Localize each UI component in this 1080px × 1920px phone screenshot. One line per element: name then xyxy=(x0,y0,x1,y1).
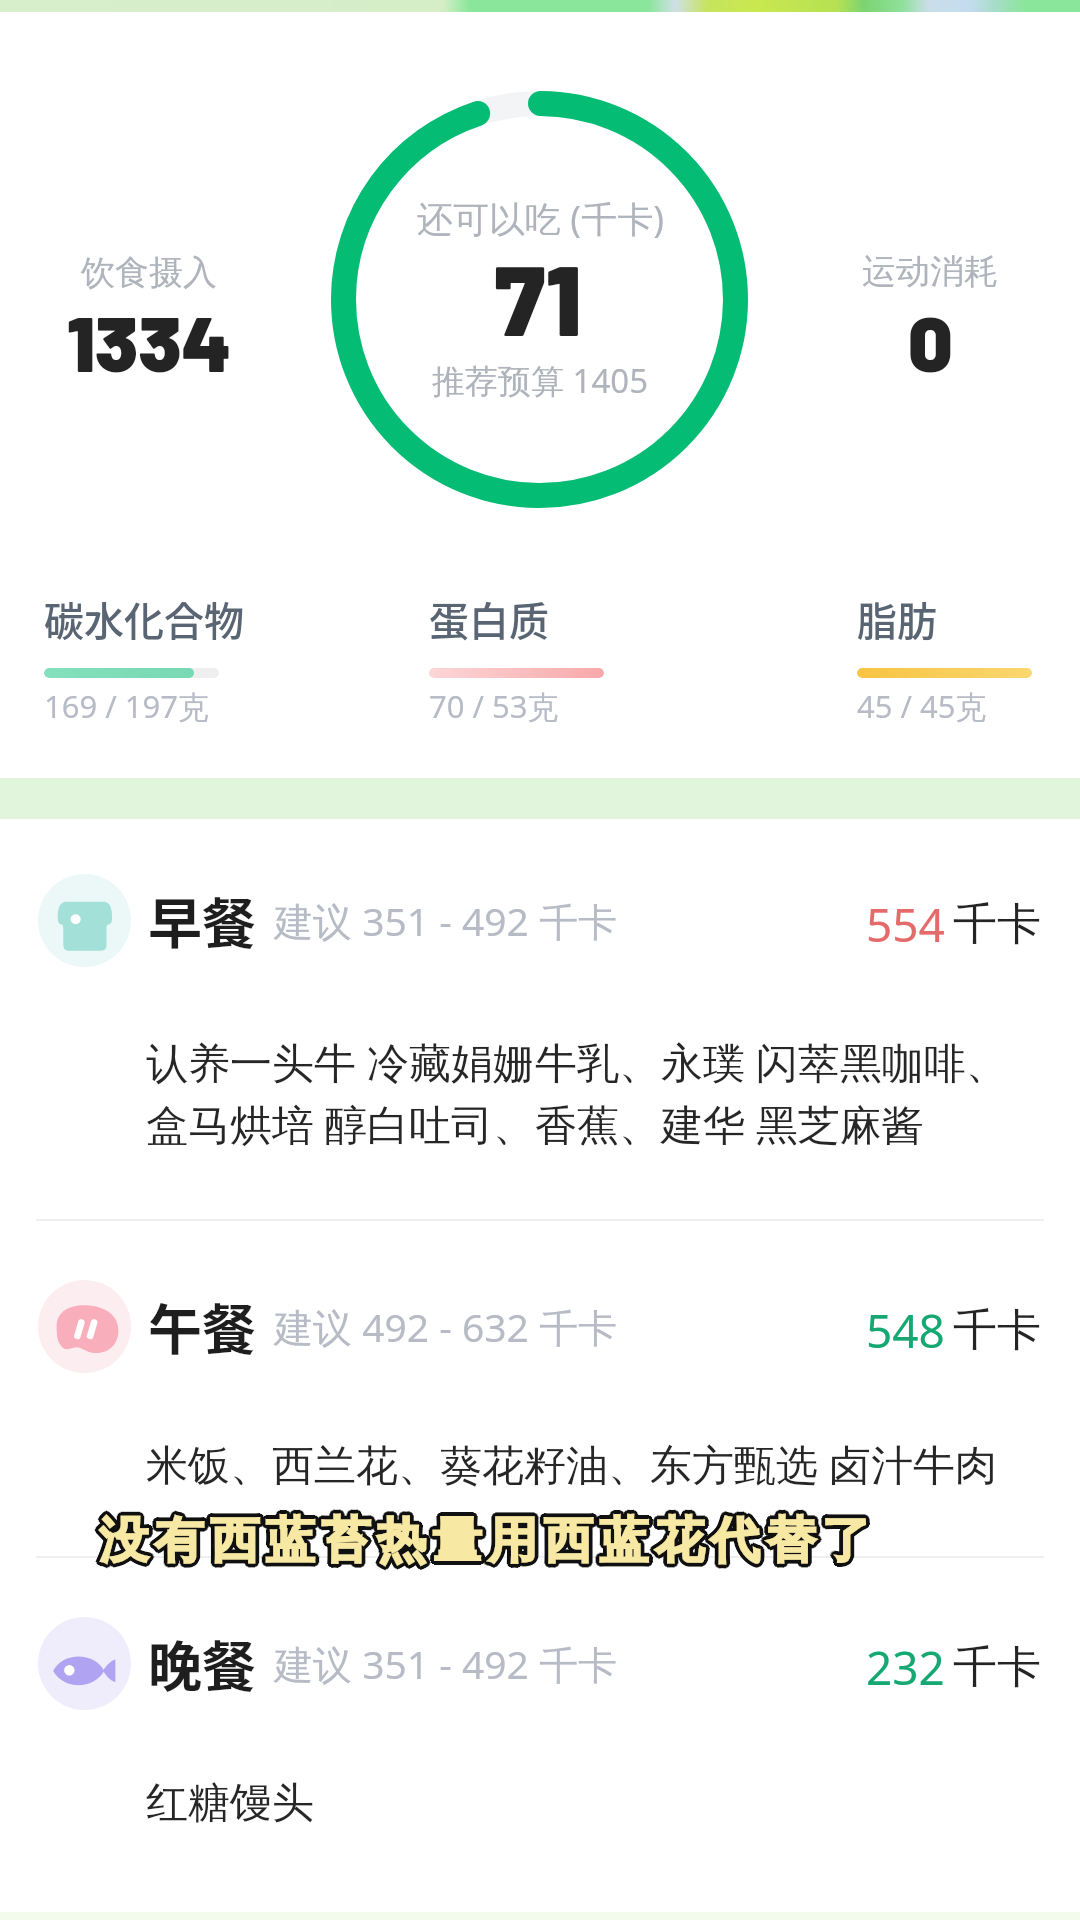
staticText: 548 xyxy=(866,1299,945,1362)
staticText: 没有西蓝苔热量用西蓝花代替了 xyxy=(96,1511,875,1573)
staticText: 71 xyxy=(495,238,581,356)
staticText: 没有西蓝苔热量用西蓝花代替了 xyxy=(98,1509,877,1571)
staticText: 盒马烘培 醇白吐司、香蕉、建华 黑芝麻酱 xyxy=(146,1095,924,1152)
staticText: 碳水化合物 xyxy=(44,590,244,648)
staticText: 没有西蓝苔热量用西蓝花代替了 xyxy=(102,1511,881,1573)
button[interactable]: 红糖馒头 xyxy=(146,1777,1046,1830)
staticText: 没有西蓝苔热量用西蓝花代替了 xyxy=(98,1511,877,1573)
staticText: 没有西蓝苔热量用西蓝花代替了 xyxy=(98,1513,877,1575)
button[interactable]: 米饭、西兰花、葵花籽油、东方甄选 卤汁牛肉 xyxy=(146,1435,1046,1492)
staticText: 554 xyxy=(866,893,945,956)
staticText: 运动消耗 xyxy=(862,250,998,293)
staticText: 没有西蓝苔热量用西蓝花代替了 xyxy=(102,1510,881,1572)
staticText: 没有西蓝苔热量用西蓝花代替了 xyxy=(99,1507,878,1569)
staticText: 没有西蓝苔热量用西蓝花代替了 xyxy=(102,1508,881,1570)
staticText: 没有西蓝苔热量用西蓝花代替了 xyxy=(97,1513,876,1575)
staticText: 70 / 53克 xyxy=(429,685,559,727)
staticText: 红糖馒头 xyxy=(146,1777,314,1830)
staticText: 232 xyxy=(866,1636,945,1699)
staticText: 没有西蓝苔热量用西蓝花代替了 xyxy=(103,1510,882,1572)
staticText: 没有西蓝苔热量用西蓝花代替了 xyxy=(99,1508,878,1570)
staticText: 没有西蓝苔热量用西蓝花代替了 xyxy=(98,1507,877,1569)
staticText: 0 xyxy=(908,294,953,388)
staticText: 没有西蓝苔热量用西蓝花代替了 xyxy=(97,1509,876,1571)
staticText: 没有西蓝苔热量用西蓝花代替了 xyxy=(97,1511,876,1573)
staticText: 没有西蓝苔热量用西蓝花代替了 xyxy=(100,1513,879,1575)
staticText: 建议 492 - 632 千卡 xyxy=(274,1300,617,1353)
staticText: 没有西蓝苔热量用西蓝花代替了 xyxy=(101,1511,880,1573)
staticText: 没有西蓝苔热量用西蓝花代替了 xyxy=(97,1508,876,1570)
staticText: 没有西蓝苔热量用西蓝花代替了 xyxy=(100,1508,879,1570)
staticText: 早餐 xyxy=(148,881,256,959)
staticText: 还可以吃 (千卡) xyxy=(417,194,664,243)
staticText: 45 / 45克 xyxy=(857,685,987,727)
staticText: 没有西蓝苔热量用西蓝花代替了 xyxy=(102,1512,881,1574)
staticText: 没有西蓝苔热量用西蓝花代替了 xyxy=(102,1509,881,1571)
staticText: 千卡 xyxy=(953,1640,1041,1695)
staticText: 没有西蓝苔热量用西蓝花代替了 xyxy=(96,1510,875,1572)
staticText: 没有西蓝苔热量用西蓝花代替了 xyxy=(99,1510,878,1572)
staticText: 没有西蓝苔热量用西蓝花代替了 xyxy=(101,1513,880,1575)
button[interactable]: 蛋白质 xyxy=(429,590,604,727)
staticText: 没有西蓝苔热量用西蓝花代替了 xyxy=(101,1512,880,1574)
staticText: 没有西蓝苔热量用西蓝花代替了 xyxy=(98,1510,877,1572)
staticText: 没有西蓝苔热量用西蓝花代替了 xyxy=(100,1511,879,1573)
staticText: 蛋白质 xyxy=(429,590,549,648)
staticText: 脂肪 xyxy=(857,590,937,648)
staticText: 建议 351 - 492 千卡 xyxy=(274,1637,617,1690)
button[interactable]: 碳水化合物 xyxy=(44,590,244,727)
staticText: 千卡 xyxy=(953,1303,1041,1358)
staticText: 没有西蓝苔热量用西蓝花代替了 xyxy=(97,1510,876,1572)
staticText: 千卡 xyxy=(953,897,1041,952)
staticText: 认养一头牛 冷藏娟姗牛乳、永璞 闪萃黑咖啡、 xyxy=(146,1033,1008,1090)
staticText: 没有西蓝苔热量用西蓝花代替了 xyxy=(95,1510,874,1572)
staticText: 没有西蓝苔热量用西蓝花代替了 xyxy=(96,1508,875,1570)
staticText: 没有西蓝苔热量用西蓝花代替了 xyxy=(98,1508,877,1570)
staticText: 没有西蓝苔热量用西蓝花代替了 xyxy=(100,1510,879,1572)
staticText: 没有西蓝苔热量用西蓝花代替了 xyxy=(98,1512,877,1574)
staticText: 推荐预算 1405 xyxy=(432,358,649,403)
button[interactable]: 认养一头牛 冷藏娟姗牛乳、永璞 闪萃黑咖啡、 xyxy=(146,1033,1046,1152)
button[interactable] xyxy=(0,1260,1080,1392)
staticText: 没有西蓝苔热量用西蓝花代替了 xyxy=(99,1512,878,1574)
staticText: 没有西蓝苔热量用西蓝花代替了 xyxy=(96,1512,875,1574)
staticText: 没有西蓝苔热量用西蓝花代替了 xyxy=(97,1512,876,1574)
staticText: 没有西蓝苔热量用西蓝花代替了 xyxy=(100,1509,879,1571)
staticText: 没有西蓝苔热量用西蓝花代替了 xyxy=(97,1507,876,1569)
button[interactable]: 脂肪 xyxy=(857,590,1032,727)
staticText: 没有西蓝苔热量用西蓝花代替了 xyxy=(101,1509,880,1571)
staticText: 没有西蓝苔热量用西蓝花代替了 xyxy=(100,1507,879,1569)
staticText: 没有西蓝苔热量用西蓝花代替了 xyxy=(100,1512,879,1574)
staticText: 没有西蓝苔热量用西蓝花代替了 xyxy=(99,1511,878,1573)
staticText: 午餐 xyxy=(148,1287,256,1365)
staticText: 饮食摄入 xyxy=(81,251,217,294)
staticText: 1334 xyxy=(67,294,232,388)
staticText: 没有西蓝苔热量用西蓝花代替了 xyxy=(99,1513,878,1575)
staticText: 没有西蓝苔热量用西蓝花代替了 xyxy=(101,1508,880,1570)
staticText: 没有西蓝苔热量用西蓝花代替了 xyxy=(101,1507,880,1569)
staticText: 没有西蓝苔热量用西蓝花代替了 xyxy=(99,1506,878,1568)
staticText: 169 / 197克 xyxy=(44,685,210,727)
button[interactable] xyxy=(0,854,1080,986)
staticText: 没有西蓝苔热量用西蓝花代替了 xyxy=(101,1510,880,1572)
staticText: 没有西蓝苔热量用西蓝花代替了 xyxy=(99,1509,878,1571)
staticText: 没有西蓝苔热量用西蓝花代替了 xyxy=(99,1514,878,1576)
button[interactable] xyxy=(0,1597,1080,1729)
button[interactable]: Calorie budget ring xyxy=(331,91,748,508)
staticText: 没有西蓝苔热量用西蓝花代替了 xyxy=(96,1509,875,1571)
staticText: 米饭、西兰花、葵花籽油、东方甄选 卤汁牛肉 xyxy=(146,1435,997,1492)
staticText: 晚餐 xyxy=(148,1624,256,1702)
staticText: 建议 351 - 492 千卡 xyxy=(274,894,617,947)
